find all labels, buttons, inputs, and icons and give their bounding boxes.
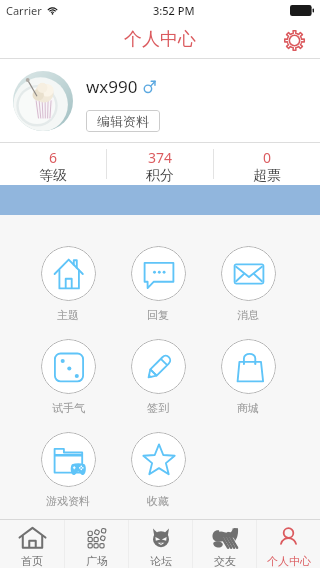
staticText: 论坛 xyxy=(150,554,172,568)
staticText: 编辑资料 xyxy=(97,113,149,129)
button[interactable]: 6 xyxy=(0,143,106,185)
staticText: 主题 xyxy=(57,308,79,322)
staticText: Carrier xyxy=(6,3,42,18)
button[interactable]: 个人中心 xyxy=(124,28,196,51)
staticText: 0 xyxy=(263,148,272,167)
staticText: 个人中心 xyxy=(124,28,196,51)
staticText: 回复 xyxy=(147,308,169,322)
staticText: 消息 xyxy=(237,308,259,322)
button[interactable]: 游戏资料 xyxy=(32,432,104,508)
button[interactable]: 个人中心 xyxy=(257,520,320,568)
button[interactable]: 广场 xyxy=(65,520,128,568)
staticText: 等级 xyxy=(39,167,67,185)
staticText: wx990 xyxy=(86,75,138,98)
staticText: 签到 xyxy=(147,401,169,415)
button[interactable]: 签到 xyxy=(122,339,194,415)
button[interactable]: 消息 xyxy=(212,246,284,322)
button[interactable]: 374 xyxy=(107,143,213,185)
button[interactable]: 交友 xyxy=(193,520,256,568)
button[interactable]: 编辑资料 xyxy=(86,110,160,132)
button[interactable]: 试手气 xyxy=(32,339,104,415)
staticText: 个人中心 xyxy=(267,554,311,568)
staticText: 试手气 xyxy=(52,401,85,415)
staticText: 积分 xyxy=(146,167,174,185)
staticText: 超票 xyxy=(253,167,281,185)
staticText: 首页 xyxy=(21,554,43,568)
button[interactable]: 商城 xyxy=(212,339,284,415)
staticText: 3:52 PM xyxy=(153,3,195,18)
button[interactable]: 0 xyxy=(214,143,320,185)
button[interactable]: 首页 xyxy=(0,520,64,568)
staticText: 交友 xyxy=(214,554,236,568)
button[interactable]: 主题 xyxy=(32,246,104,322)
staticText: 收藏 xyxy=(147,494,169,508)
button[interactable]: 收藏 xyxy=(122,432,194,508)
button[interactable]: 论坛 xyxy=(129,520,192,568)
staticText: 广场 xyxy=(86,554,108,568)
staticText: 6 xyxy=(49,148,58,167)
staticText: 商城 xyxy=(237,401,259,415)
button[interactable]: Settings xyxy=(280,26,308,54)
button[interactable]: Avatar xyxy=(13,71,73,131)
staticText: 游戏资料 xyxy=(46,494,90,508)
button[interactable]: 回复 xyxy=(122,246,194,322)
staticText: 374 xyxy=(148,148,173,167)
